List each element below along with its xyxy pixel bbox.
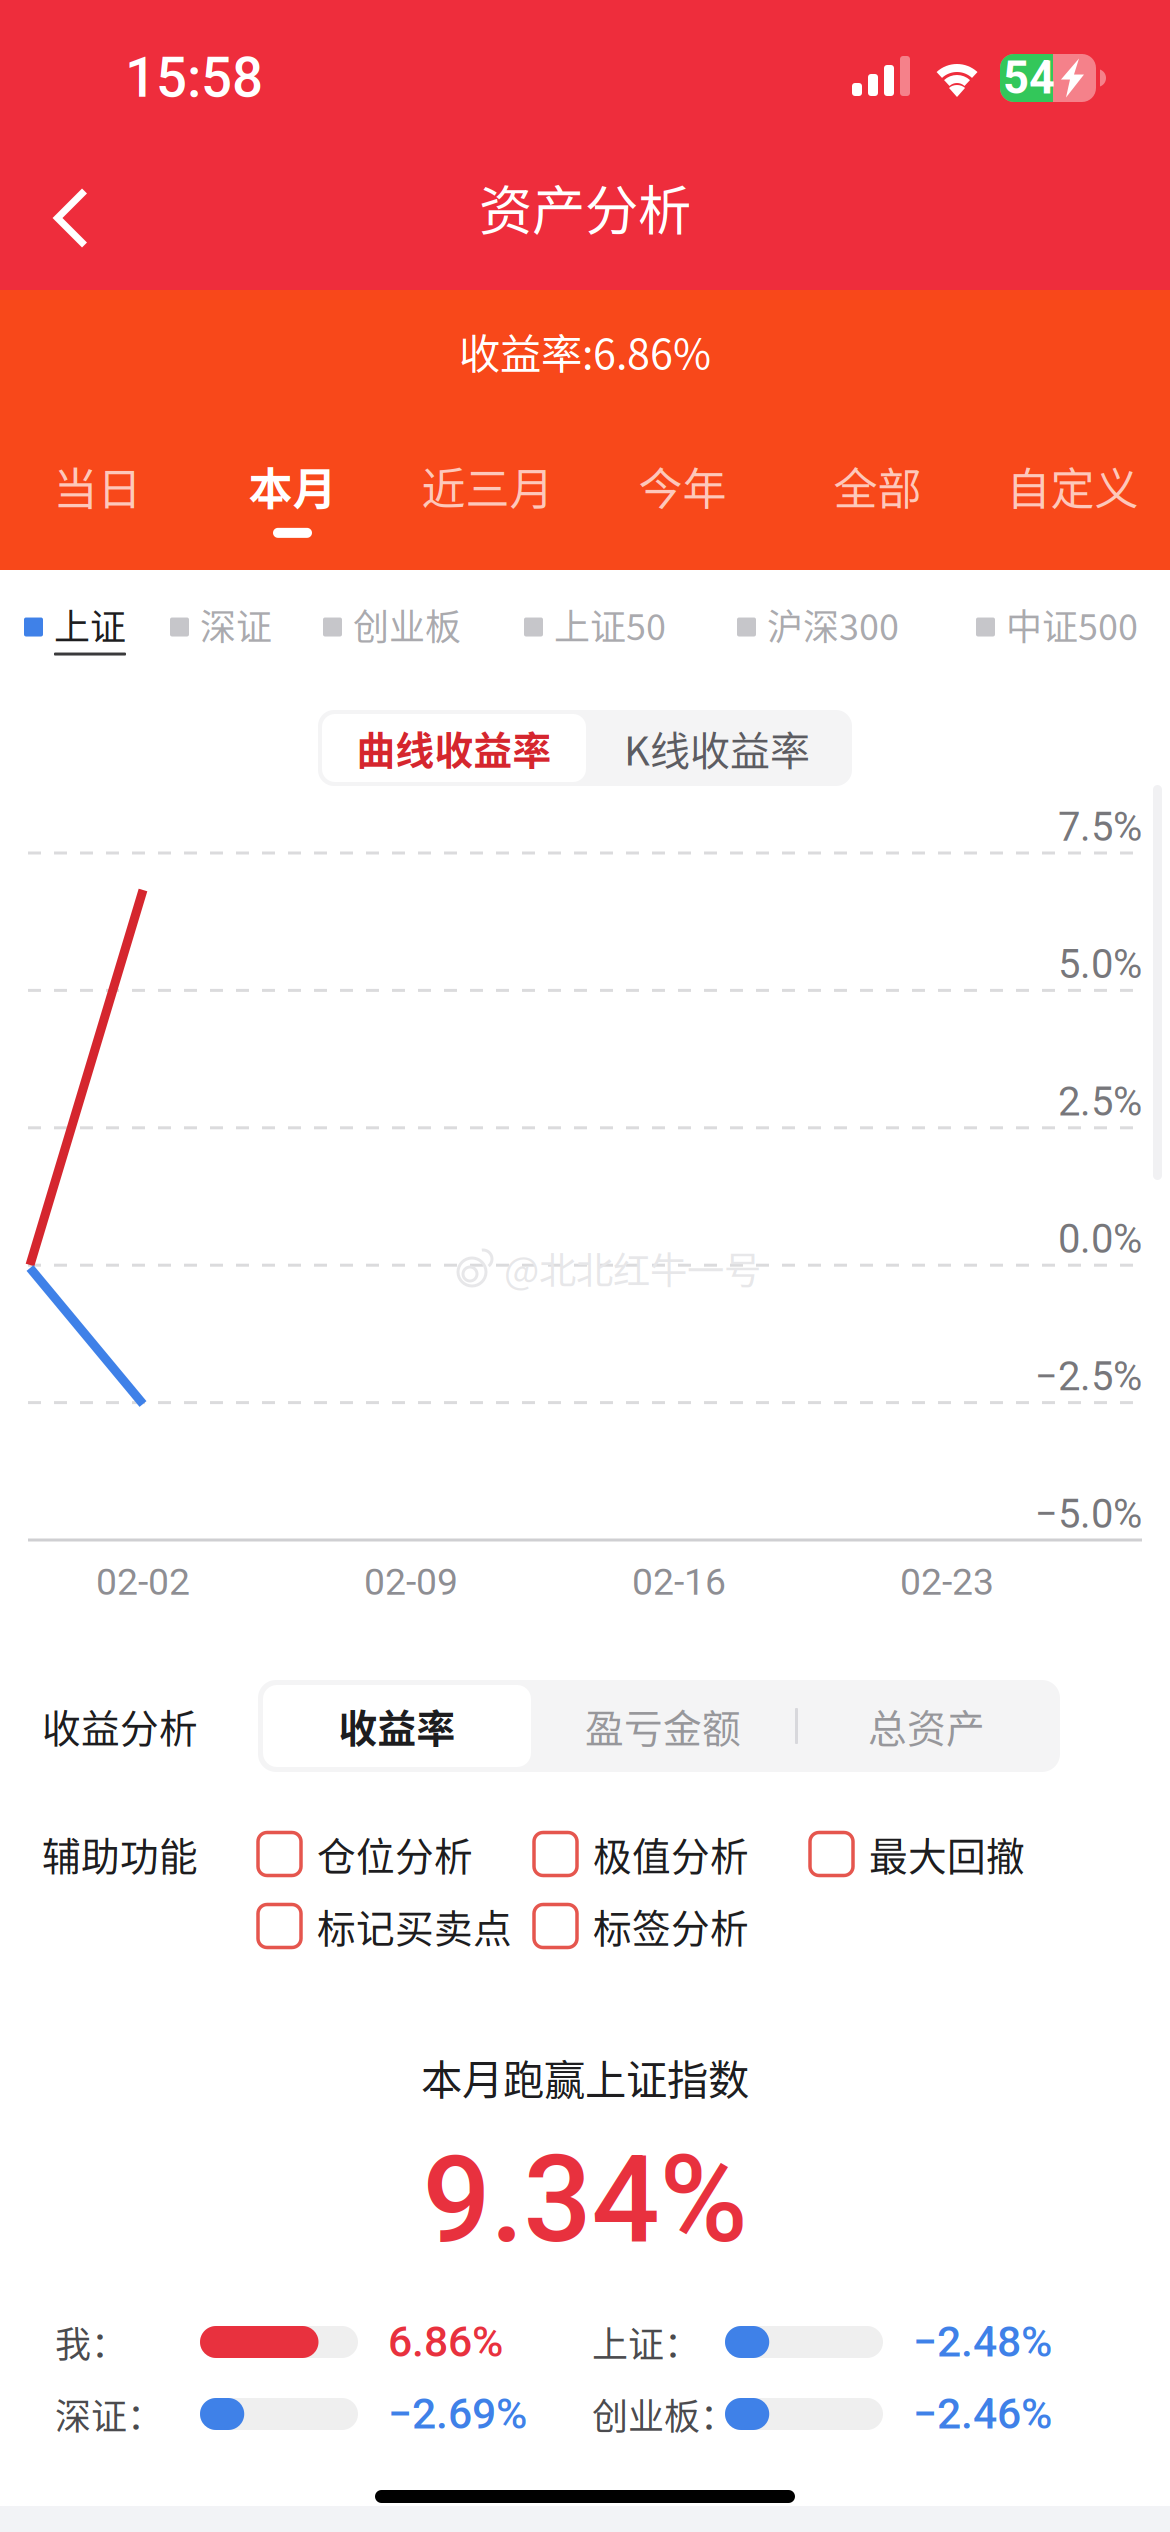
button[interactable]: 标签分析 [534, 1890, 810, 1962]
staticText: 深证： [55, 2388, 163, 2440]
staticText: 当日 [53, 454, 141, 518]
staticText: 曲线收益率 [356, 720, 551, 776]
button[interactable]: 曲线收益率 [322, 714, 586, 782]
staticText: 9.34% [422, 2130, 747, 2270]
staticText: 02-23 [900, 1560, 994, 1604]
staticText: 本月跑赢上证指数 [421, 2047, 749, 2107]
button[interactable]: 中证500 [976, 594, 1156, 660]
staticText: 上证 [54, 598, 126, 650]
button[interactable]: 标记买卖点 [258, 1890, 534, 1962]
staticText: −2.69% [388, 2389, 527, 2439]
staticText: 深证 [200, 598, 272, 650]
staticText: 0.0% [1058, 1216, 1142, 1263]
button[interactable]: 收益率 [263, 1685, 531, 1767]
staticText: −2.5% [1035, 1353, 1142, 1400]
button[interactable]: 创业板 [323, 594, 524, 660]
staticText: 本月 [248, 454, 336, 518]
staticText: 最大回撤 [869, 1826, 1025, 1882]
button[interactable]: 全部 [780, 442, 975, 556]
button[interactable]: 上证 [24, 594, 170, 660]
staticText: −5.0% [1035, 1491, 1142, 1537]
staticText: 自定义 [1006, 454, 1138, 518]
staticText: 全部 [833, 454, 921, 518]
staticText: 总资产 [868, 1698, 985, 1754]
button[interactable]: 深证 [170, 594, 323, 660]
staticText: 标签分析 [593, 1898, 749, 1954]
staticText: 创业板： [592, 2388, 736, 2440]
staticText: 5.0% [1058, 941, 1142, 988]
staticText: 上证： [592, 2316, 700, 2368]
button[interactable]: 自定义 [975, 442, 1170, 556]
staticText: 2.5% [1058, 1078, 1142, 1125]
staticText: 15:58 [125, 46, 263, 110]
button[interactable]: 本月 [195, 442, 390, 556]
staticText: 盈亏金额 [585, 1698, 741, 1754]
staticText: 收益率:6.86% [459, 321, 711, 381]
button[interactable]: 盈亏金额 [531, 1685, 795, 1767]
staticText: 收益分析 [42, 1698, 198, 1754]
staticText: 02-02 [96, 1560, 190, 1604]
staticText: 沪深300 [767, 598, 899, 650]
staticText: 中证500 [1006, 598, 1138, 650]
staticText: −2.48% [913, 2317, 1052, 2367]
button[interactable]: 最大回撤 [810, 1818, 1086, 1890]
staticText: 创业板 [353, 598, 461, 650]
staticText: 6.86% [388, 2317, 503, 2367]
staticText: 资产分析 [479, 168, 691, 246]
staticText: 今年 [638, 454, 726, 518]
button[interactable]: 仓位分析 [258, 1818, 534, 1890]
staticText: 收益率 [338, 1698, 455, 1754]
staticText: 7.5% [1058, 804, 1142, 850]
staticText: 02-09 [364, 1560, 458, 1604]
staticText: 标记买卖点 [317, 1898, 512, 1954]
staticText: 上证50 [554, 598, 666, 650]
button[interactable]: 当日 [0, 442, 195, 556]
button[interactable]: K线收益率 [586, 714, 848, 782]
button[interactable]: 沪深300 [737, 594, 976, 660]
staticText: −2.46% [913, 2389, 1052, 2439]
staticText: 极值分析 [593, 1826, 749, 1882]
staticText: 辅助功能 [42, 1826, 198, 1882]
staticText: 近三月 [421, 454, 553, 518]
staticText: 02-16 [632, 1560, 726, 1604]
staticText: 我： [55, 2316, 127, 2368]
staticText: K线收益率 [624, 719, 810, 777]
button[interactable]: 总资产 [798, 1685, 1055, 1767]
button[interactable]: 极值分析 [534, 1818, 810, 1890]
button[interactable]: 上证50 [524, 594, 737, 660]
button[interactable]: 今年 [585, 442, 780, 556]
staticText: @北北红牛一号 [504, 1241, 761, 1295]
button[interactable]: 近三月 [390, 442, 585, 556]
button[interactable]: Back [3, 170, 139, 266]
staticText: 54 [1003, 51, 1055, 104]
staticText: 仓位分析 [317, 1826, 473, 1882]
